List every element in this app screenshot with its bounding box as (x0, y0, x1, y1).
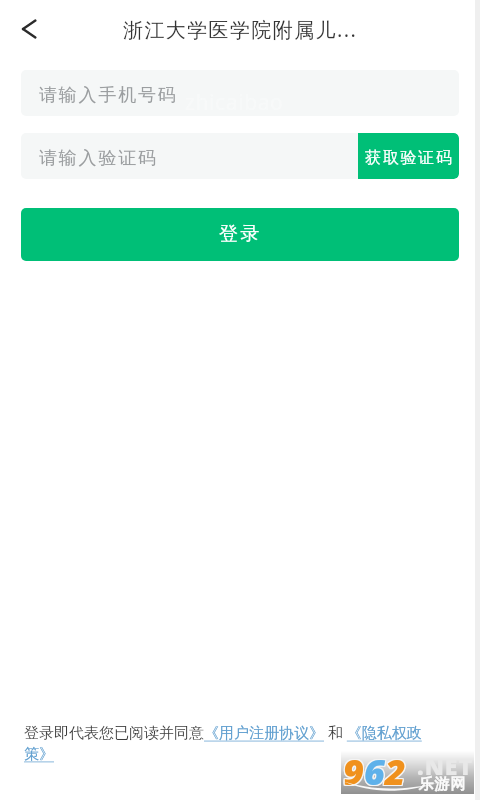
staticText: 962 (342, 748, 405, 791)
staticText: 请输入验证码 (39, 147, 158, 170)
staticText: 962 (344, 746, 407, 789)
staticText: 962 (344, 747, 407, 790)
staticText: 乐游网 (418, 775, 466, 794)
staticText: 请输入手机号码 (39, 84, 178, 107)
staticText: 获取验证码 (364, 148, 453, 168)
button[interactable]: Back (10, 10, 48, 48)
button[interactable]: 获取验证码 (358, 133, 459, 179)
staticText: 962 (343, 748, 406, 791)
staticText: 浙江大学医学院附属儿... (123, 16, 358, 43)
staticText: 962 (344, 748, 407, 791)
staticText: .NET (417, 750, 474, 781)
staticText: 962 (343, 747, 406, 790)
button[interactable]: 登录 (21, 208, 459, 261)
staticText: 962 (343, 746, 406, 789)
button[interactable]: 请输入手机号码 (21, 70, 459, 116)
staticText: 登录 (219, 222, 262, 246)
staticText: 962 (342, 746, 405, 789)
staticText: 962 (342, 747, 405, 790)
staticText: 登录即代表您已阅读并同意《用户注册协议》 和 《隐私权政策》 (24, 722, 436, 763)
